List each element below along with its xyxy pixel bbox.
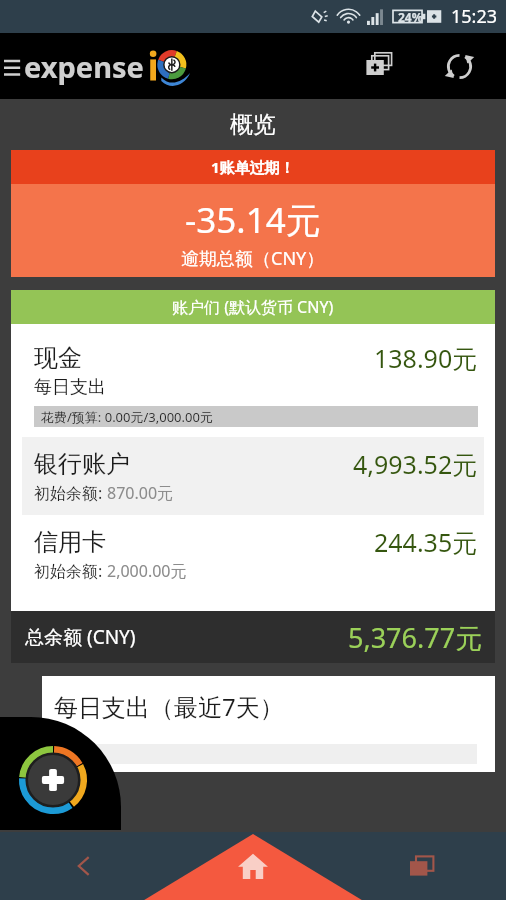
button[interactable]: 总余额 (CNY) (11, 611, 495, 663)
staticText: 银行账户 (34, 449, 130, 479)
staticText: 初始余额: (34, 482, 107, 504)
staticText: 1账单过期！ (211, 157, 295, 177)
staticText: 每日支出 (34, 376, 106, 399)
button[interactable]: Refresh (432, 39, 486, 93)
staticText: 现金 (34, 343, 82, 373)
button[interactable]: Menu and app home (2, 44, 192, 88)
button[interactable]: Recent apps (337, 832, 506, 900)
staticText: expense (24, 47, 144, 86)
button[interactable]: 1账单过期！ (11, 150, 495, 277)
staticText: 初始余额: (34, 560, 107, 582)
staticText: 账户们 (默认货币 CNY) (172, 296, 334, 318)
button[interactable]: Home (168, 832, 337, 900)
staticText: 15:23 (451, 4, 498, 29)
staticText: 244.35元 (374, 525, 478, 559)
button[interactable]: Back (0, 832, 168, 900)
staticText: 逾期总额（CNY） (181, 246, 325, 271)
button[interactable]: 每日支出（最近7天） (42, 676, 495, 772)
button[interactable]: 信用卡 (22, 515, 484, 593)
button[interactable]: 账户们 (默认货币 CNY) (11, 290, 495, 324)
staticText: 概览 (0, 110, 506, 139)
staticText: 24% (398, 9, 423, 25)
staticText: -35.14元 (185, 196, 321, 244)
staticText: 870.00元 (107, 482, 174, 504)
button[interactable]: 现金 (11, 324, 495, 437)
staticText: 138.90元 (374, 341, 478, 375)
button[interactable]: 银行账户 (22, 437, 484, 515)
staticText: 总余额 (CNY) (25, 624, 136, 650)
staticText: 花费/预算: 0.00元/3,000.00元 (41, 408, 213, 426)
staticText: 信用卡 (34, 527, 106, 557)
staticText: 每日支出（最近7天） (54, 690, 284, 723)
staticText: 4,993.52元 (353, 447, 478, 481)
button[interactable]: Add transaction (352, 39, 406, 93)
staticText: 2,000.00元 (107, 560, 187, 582)
staticText: 5,376.77元 (348, 619, 483, 656)
button[interactable]: Add (0, 717, 121, 830)
